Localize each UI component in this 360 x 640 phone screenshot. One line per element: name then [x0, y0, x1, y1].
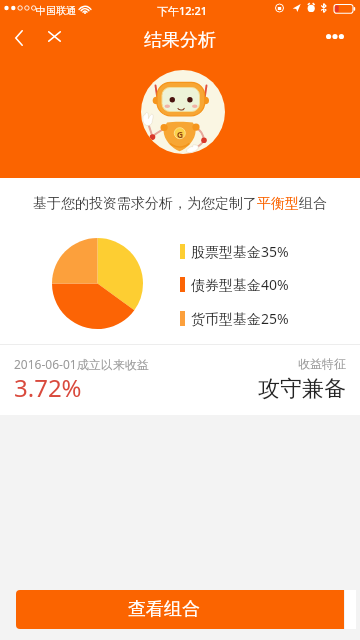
staticText: 查看组合 [128, 598, 200, 621]
staticText: 2016-06-01成立以来收益 [14, 356, 149, 372]
button[interactable]: Back [2, 20, 35, 56]
staticText: 攻守兼备 [258, 375, 346, 403]
staticText: 收益特征 [298, 356, 346, 371]
staticText: 下午12:21 [157, 3, 208, 18]
staticText: 结果分析 [144, 29, 216, 52]
staticText: 股票型基金35% [191, 242, 289, 261]
staticText: 货币型基金25% [191, 309, 289, 328]
staticText: 3.72% [14, 371, 82, 404]
button[interactable]: Close [37, 18, 72, 54]
button[interactable]: More options [315, 20, 355, 52]
staticText: 基于您的投资需求分析，为您定制了平衡型组合 [0, 195, 360, 213]
staticText: 中国联通 [36, 4, 76, 17]
staticText: 债券型基金40% [191, 275, 289, 294]
button[interactable]: 查看组合 [16, 590, 344, 629]
staticText: G [176, 128, 184, 140]
